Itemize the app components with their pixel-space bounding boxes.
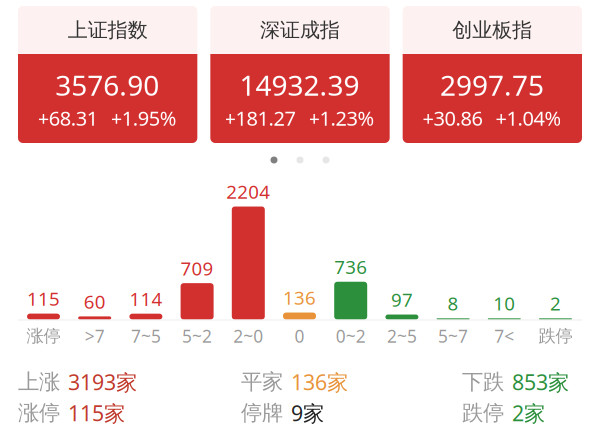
staticText: 2~5 (387, 324, 417, 347)
staticText: 10 (493, 291, 515, 316)
staticText: 5~7 (438, 324, 468, 347)
staticText: 跌停 (538, 325, 572, 347)
button[interactable]: 上证指数 (18, 6, 197, 143)
staticText: 停牌 (241, 400, 283, 426)
staticText: 深证成指 (260, 18, 340, 42)
staticText: 2家 (512, 399, 545, 427)
staticText: 0~2 (336, 324, 366, 347)
staticText: 115 (27, 286, 60, 311)
staticText: 2~0 (233, 324, 263, 347)
staticText: 97 (391, 287, 413, 312)
staticText: +68.31 (38, 105, 98, 131)
button[interactable]: 创业板指 (403, 6, 582, 143)
staticText: 涨停 (18, 400, 60, 426)
staticText: 853家 (512, 368, 569, 396)
staticText: 涨停 (26, 325, 60, 347)
staticText: 14932.39 (240, 66, 360, 104)
staticText: 7~5 (131, 324, 161, 347)
staticText: 8 (448, 291, 459, 316)
staticText: 736 (334, 254, 367, 279)
staticText: 7< (494, 324, 514, 347)
staticText: 2997.75 (440, 66, 544, 104)
staticText: +1.23% (309, 105, 375, 131)
staticText: 136 (283, 285, 316, 310)
staticText: >7 (85, 324, 105, 347)
staticText: 136家 (291, 368, 348, 396)
staticText: 3576.90 (55, 66, 159, 104)
staticText: 3193家 (68, 368, 137, 396)
staticText: +181.27 (225, 105, 296, 131)
staticText: 上证指数 (68, 18, 148, 42)
staticText: +1.04% (495, 105, 561, 131)
staticText: 2204 (226, 179, 270, 204)
staticText: 709 (181, 256, 214, 281)
staticText: 平家 (241, 369, 283, 395)
staticText: 115家 (68, 399, 125, 427)
staticText: 114 (129, 286, 162, 311)
staticText: +1.95% (111, 105, 177, 131)
staticText: 2 (550, 291, 561, 316)
staticText: 60 (84, 289, 106, 314)
staticText: 9家 (291, 399, 324, 427)
staticText: 创业板指 (452, 18, 532, 42)
button[interactable]: 深证成指 (210, 6, 390, 143)
staticText: 下跌 (462, 369, 504, 395)
staticText: +30.86 (422, 105, 482, 131)
staticText: 0 (294, 324, 304, 347)
staticText: 5~2 (182, 324, 212, 347)
staticText: 上涨 (18, 369, 60, 395)
staticText: 跌停 (462, 400, 504, 426)
